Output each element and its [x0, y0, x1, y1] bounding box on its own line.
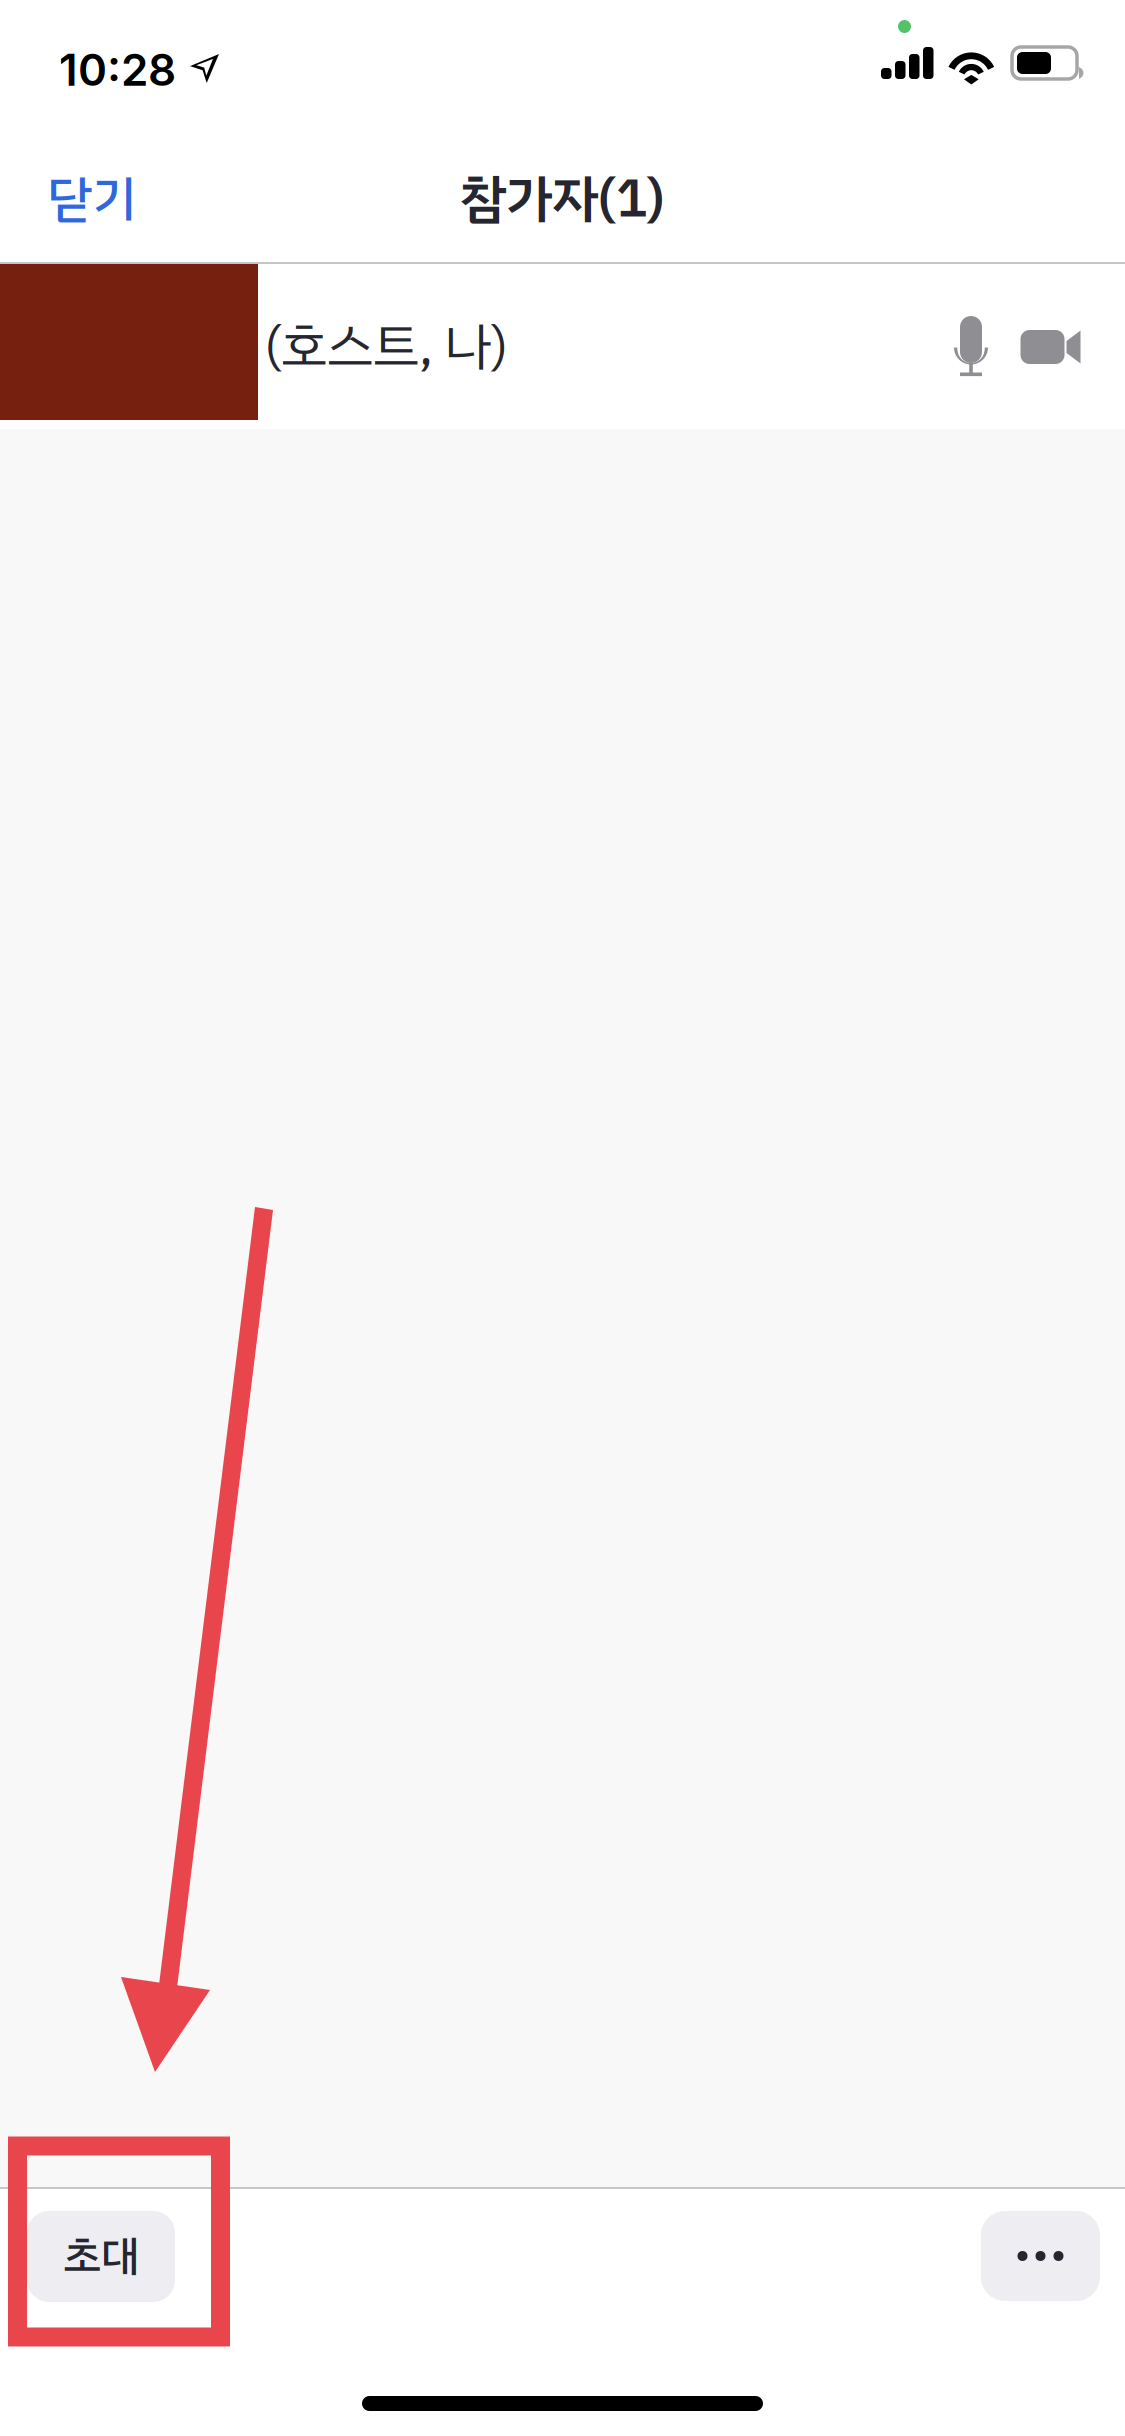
staticText: 참가자(1): [460, 160, 665, 238]
button[interactable]: More options: [981, 2211, 1100, 2301]
staticText: 10:28: [59, 43, 176, 96]
button[interactable]: Mute: [933, 292, 1009, 402]
button[interactable]: 닫기: [0, 144, 208, 254]
button[interactable]: 초대: [27, 2211, 175, 2302]
button[interactable]: Stop video: [1004, 292, 1098, 402]
staticText: 닫기: [48, 162, 136, 236]
staticText: 초대: [63, 2224, 139, 2288]
staticText: (호스트, 나): [264, 308, 508, 386]
button[interactable]: (호스트, 나): [0, 264, 1125, 429]
